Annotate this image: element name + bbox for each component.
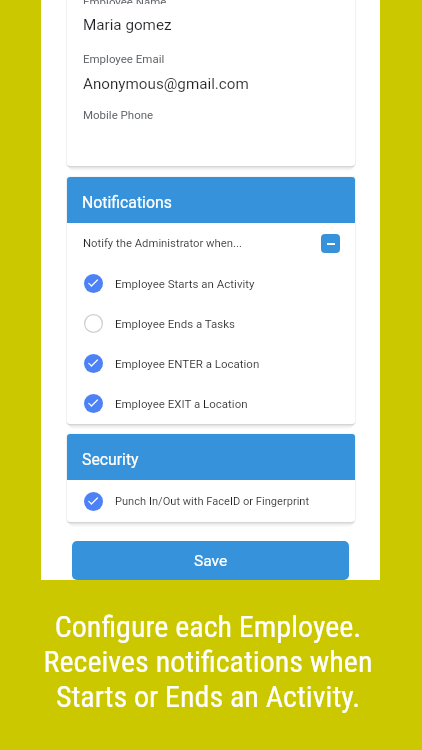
staticText: Employee EXIT a Location bbox=[115, 397, 248, 410]
button[interactable]: Save bbox=[72, 541, 349, 580]
staticText: Notifications bbox=[82, 193, 172, 212]
button[interactable]: Employee EXIT a Location bbox=[67, 383, 355, 423]
staticText: Anonymous@gmail.com bbox=[83, 75, 249, 93]
staticText: Security bbox=[82, 450, 139, 469]
staticText: Employee Starts an Activity bbox=[115, 277, 255, 290]
button[interactable]: Employee ENTER a Location bbox=[67, 343, 355, 383]
staticText: Configure each Employee. Receives notifi… bbox=[0, 609, 419, 714]
button[interactable]: Employee Ends a Tasks bbox=[67, 303, 355, 343]
staticText: Mobile Phone bbox=[83, 108, 154, 121]
button[interactable]: Employee Starts an Activity bbox=[67, 263, 355, 303]
staticText: Maria gomez bbox=[83, 16, 172, 34]
staticText: Employee Email bbox=[83, 52, 165, 65]
staticText: Employee Name bbox=[83, 0, 167, 4]
staticText: Employee Ends a Tasks bbox=[115, 317, 235, 330]
staticText: Notify the Administrator when... bbox=[83, 237, 242, 250]
staticText: Employee ENTER a Location bbox=[115, 357, 260, 370]
staticText: Save bbox=[194, 552, 228, 570]
staticText: Punch In/Out with FaceID or Fingerprint bbox=[115, 495, 310, 508]
button[interactable]: Punch In/Out with FaceID or Fingerprint bbox=[67, 480, 355, 522]
button[interactable]: Collapse notifications bbox=[321, 234, 340, 253]
